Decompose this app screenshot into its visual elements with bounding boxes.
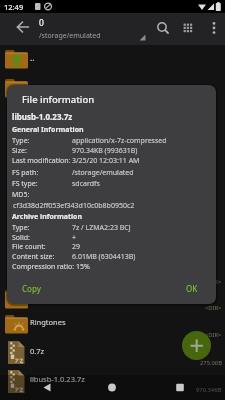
button[interactable]: [155, 20, 171, 36]
staticText: /storage/emulated: [72, 168, 134, 178]
staticText: 275.00B: [200, 359, 222, 367]
staticText: +: [72, 233, 77, 243]
button[interactable]: [165, 375, 195, 400]
staticText: Last modification:: [12, 156, 71, 166]
staticText: Copy: [22, 283, 41, 294]
staticText: 970.34KB (993631B): [72, 146, 138, 156]
staticText: File information: [22, 93, 95, 106]
button[interactable]: [97, 375, 127, 400]
staticText: ..: [30, 52, 35, 64]
staticText: Compression ratio: 15%: [12, 262, 90, 272]
button[interactable]: OK: [175, 279, 209, 298]
staticText: Type:: [12, 136, 30, 146]
staticText: Solid:: [12, 233, 30, 243]
staticText: application/x-7z-compressed: [72, 136, 167, 146]
staticText: 970.34KB: [196, 386, 222, 394]
staticText: OK: [186, 283, 198, 294]
staticText: sdcardfs: [72, 179, 100, 189]
button[interactable]: [0, 366, 225, 395]
staticText: libusb-1.0.23.7z: [12, 111, 73, 122]
staticText: <DIR>: [205, 331, 222, 339]
button[interactable]: [32, 375, 62, 400]
staticText: 6.01MB (6304413B): [72, 252, 136, 262]
button[interactable]: [207, 21, 221, 35]
staticText: cf3d38d2ff053ef343d10c0b8b0950c2: [13, 201, 135, 211]
staticText: FS type:: [12, 179, 38, 189]
button[interactable]: [180, 20, 196, 36]
staticText: FS path:: [12, 168, 39, 178]
staticText: Archive information: [12, 212, 83, 222]
staticText: <DIR>: [205, 278, 222, 286]
button[interactable]: [15, 19, 31, 35]
staticText: Size:: [12, 146, 27, 156]
staticText: 3/25/20 12:03:11 AM: [72, 156, 140, 166]
staticText: Ringtones: [30, 317, 66, 327]
staticText: 12:49: [4, 2, 24, 12]
button[interactable]: [0, 45, 225, 75]
staticText: Music: [30, 82, 51, 92]
button[interactable]: /storage/emulated: [36, 29, 146, 43]
staticText: MD5:: [12, 190, 30, 200]
button[interactable]: [0, 75, 225, 105]
staticText: /storage/emulated: [39, 31, 101, 41]
staticText: Content size:: [12, 252, 55, 262]
staticText: 7z / LZMA2:23 BCJ: [72, 223, 131, 233]
button[interactable]: Copy: [14, 279, 54, 298]
staticText: 29: [72, 242, 81, 252]
button[interactable]: [182, 331, 211, 360]
staticText: libusb-1.0.23.7z: [30, 374, 85, 384]
staticText: General Information: [12, 125, 84, 135]
staticText: 0.7z: [30, 346, 45, 356]
button[interactable]: [0, 337, 225, 366]
staticText: <DIR>: [205, 304, 222, 312]
button[interactable]: [0, 307, 225, 337]
staticText: File count:: [12, 242, 46, 252]
staticText: Type:: [12, 223, 30, 233]
staticText: 0: [39, 17, 44, 29]
